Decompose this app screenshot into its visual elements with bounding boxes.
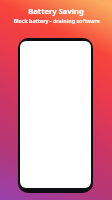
staticText: Battery Saving <box>28 6 84 16</box>
staticText: Block battery - draining software <box>13 17 100 24</box>
